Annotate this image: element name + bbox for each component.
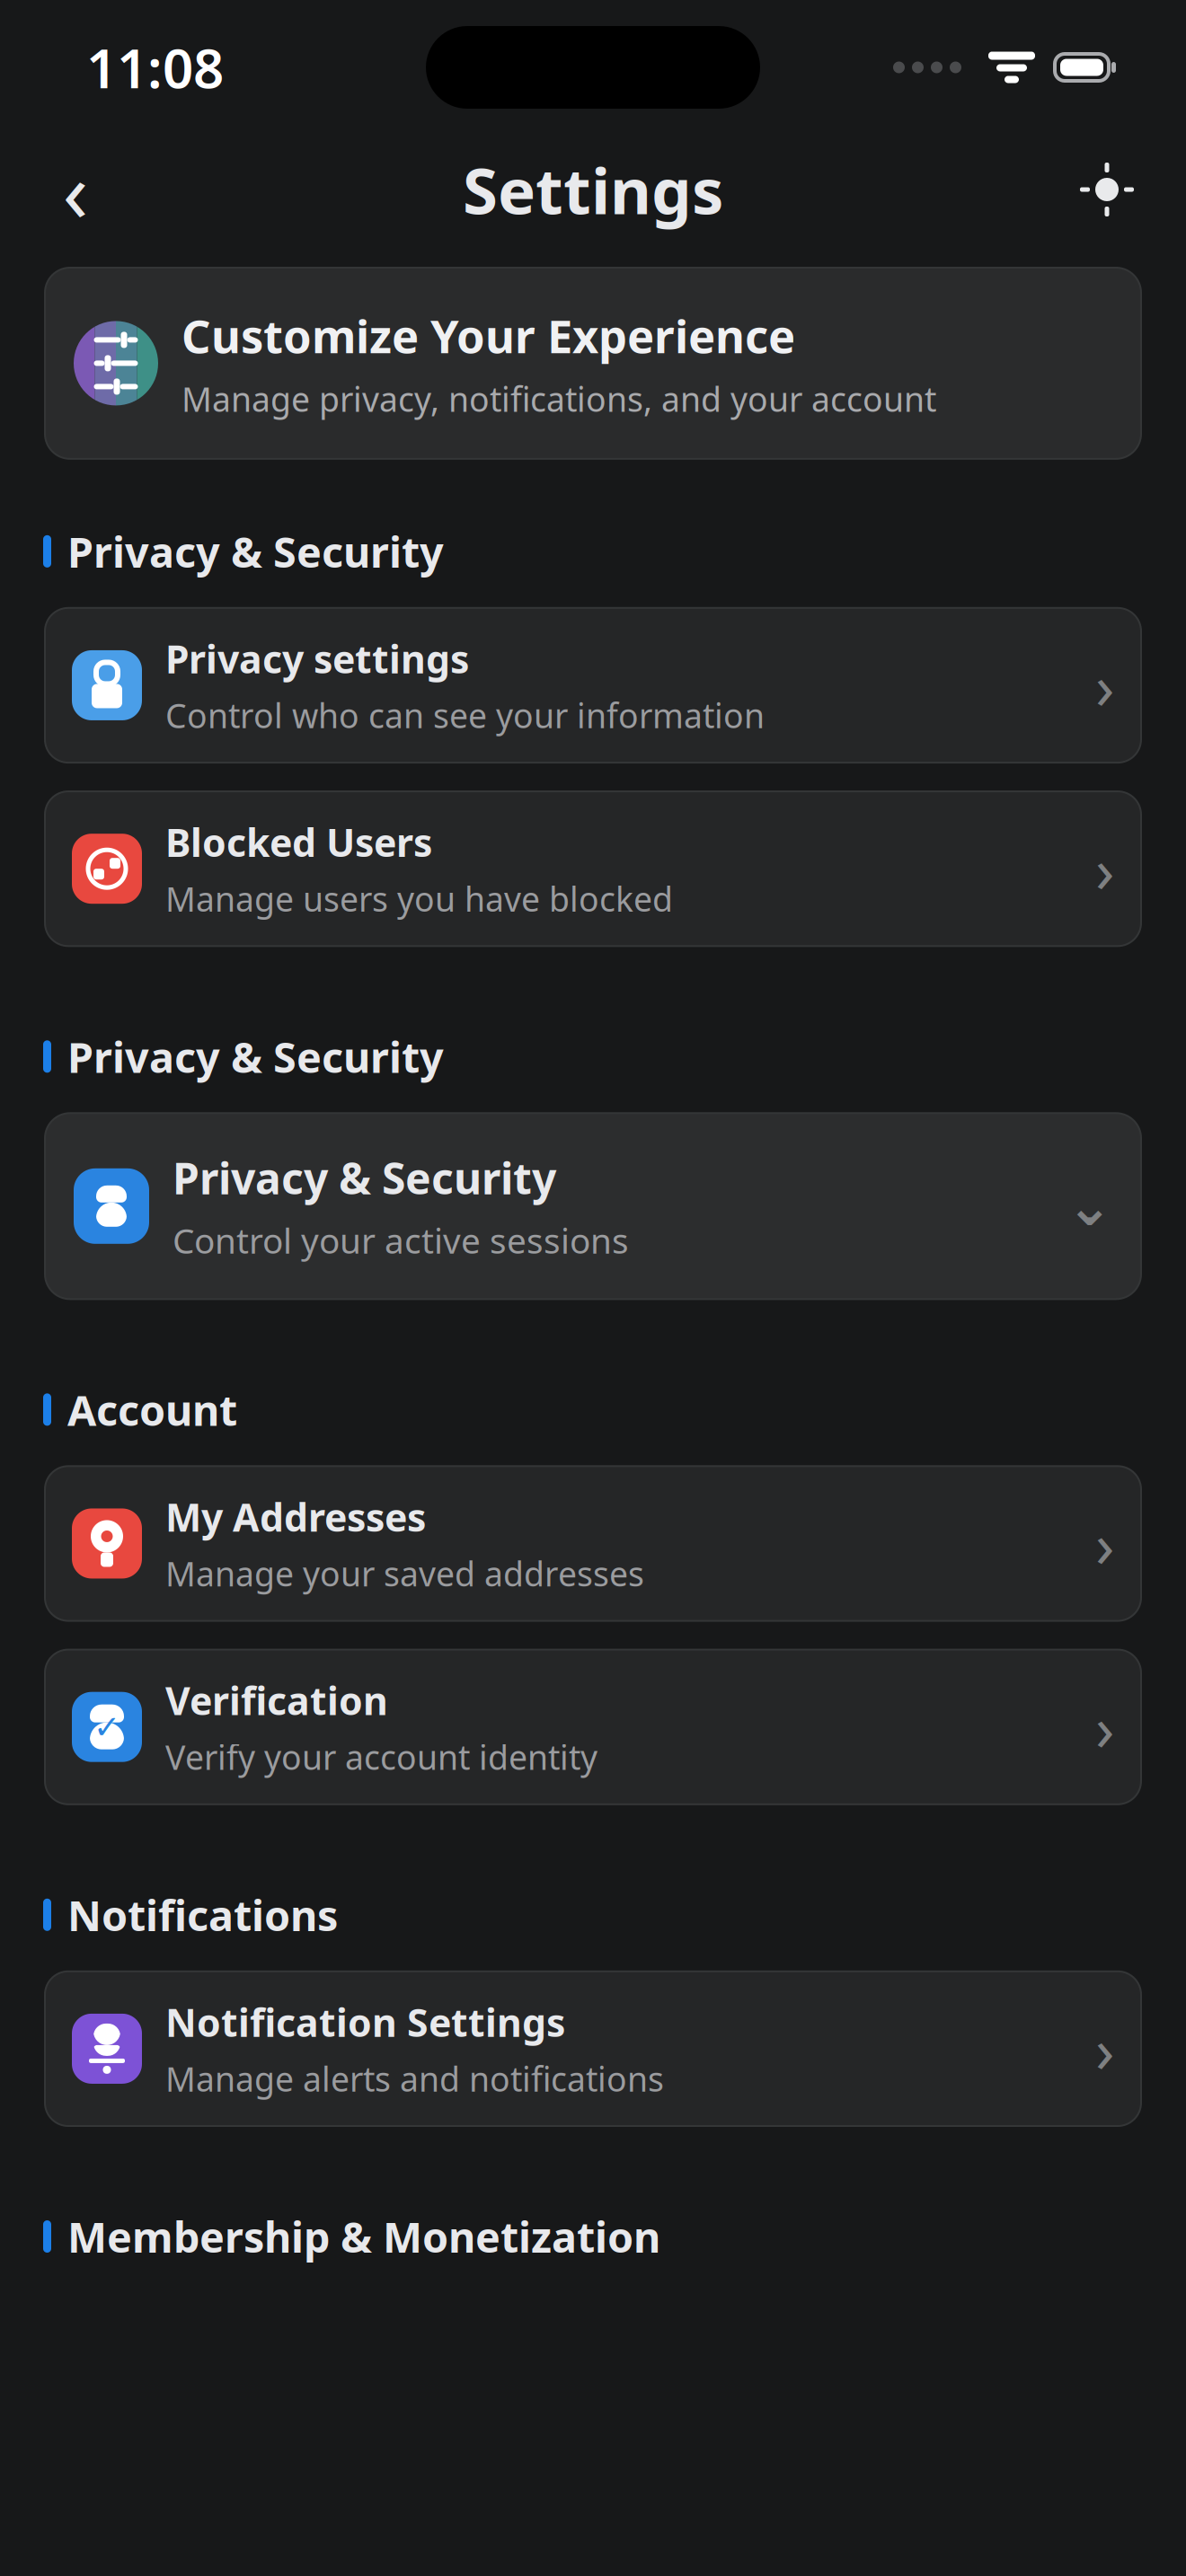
button[interactable]: My Addresses [45,1466,1141,1621]
staticText: › [1095,1686,1114,1768]
staticText: My Addresses [165,1491,426,1542]
staticText: Settings [463,147,723,232]
staticText: Manage alerts and notifications [165,2056,664,2101]
button[interactable]: Customize Your Experience [45,268,1141,459]
staticText: ‹ [62,134,89,245]
staticText: Manage privacy, notifications, and your … [181,377,936,421]
staticText: Verify your account identity [165,1735,597,1779]
staticText: Notifications [67,1887,338,1943]
staticText: Control your active sessions [173,1217,629,1263]
staticText: Customize Your Experience [181,305,795,366]
button[interactable]: Blocked Users [45,791,1141,946]
staticText: Privacy & Security [67,524,444,579]
staticText: Manage your saved addresses [165,1551,644,1596]
button[interactable]: Privacy & Security [45,1113,1141,1299]
staticText: 11:08 [86,32,224,103]
staticText: › [1095,644,1114,727]
button[interactable]: Appearance [1075,154,1139,225]
staticText: Membership & Monetization [67,2209,660,2264]
button[interactable]: ✓ [45,1650,1141,1804]
staticText: › [1095,2007,1114,2090]
staticText: Verification [165,1675,388,1726]
staticText: Blocked Users [165,817,432,867]
staticText: Privacy & Security [173,1149,556,1206]
staticText: ⌄ [1067,1175,1112,1237]
staticText: Privacy settings [165,633,469,684]
staticText: ✓ [93,1709,120,1745]
staticText: Control who can see your information [165,693,765,738]
button[interactable]: Back [43,154,108,225]
button[interactable]: Notification Settings [45,1971,1141,2126]
staticText: Account [67,1382,237,1437]
staticText: Manage users you have blocked [165,876,673,921]
staticText: › [1095,827,1114,910]
staticText: › [1095,1502,1114,1585]
button[interactable]: Privacy settings [45,608,1141,763]
staticText: Privacy & Security [67,1029,444,1084]
staticText: Notification Settings [165,1996,565,2047]
